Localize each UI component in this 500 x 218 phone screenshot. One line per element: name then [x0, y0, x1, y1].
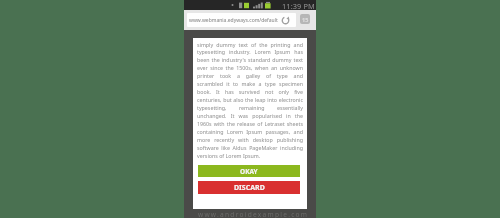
- button[interactable]: www.webmania.edyways.com/default: [187, 13, 296, 27]
- staticText: 15: [302, 16, 309, 23]
- staticText: www.webmania.edyways.com/default: [189, 17, 278, 24]
- staticText: www.androidexample.com: [198, 210, 309, 218]
- button[interactable]: DISCARD: [198, 181, 300, 194]
- button[interactable]: Tabs: [299, 13, 311, 25]
- staticText: simply dummy text of the printing and ty…: [197, 41, 303, 160]
- staticText: OKAY: [240, 167, 258, 176]
- staticText: 11:39 PM: [282, 1, 315, 11]
- staticText: DISCARD: [234, 183, 265, 193]
- other: Reload: [281, 16, 290, 25]
- button[interactable]: OKAY: [198, 165, 300, 177]
